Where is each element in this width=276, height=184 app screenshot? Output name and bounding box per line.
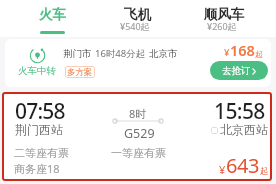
button[interactable]: 多方案 xyxy=(65,66,95,78)
staticText: 多方案 xyxy=(67,67,93,78)
staticText: 荆门市 xyxy=(63,48,92,60)
button[interactable]: 火车 xyxy=(20,0,84,37)
staticText: 643 xyxy=(226,152,260,179)
staticText: ¥260起 xyxy=(207,20,237,32)
staticText: 16时48分起 xyxy=(95,47,146,60)
button[interactable]: 07:58 xyxy=(2,92,272,181)
staticText: 二等座有票 xyxy=(14,146,69,160)
staticText: 北京市 xyxy=(149,48,178,60)
button[interactable]: 顺风车 xyxy=(193,0,257,37)
staticText: 飞机 xyxy=(124,6,151,23)
staticText: 15:58 xyxy=(214,97,265,126)
staticText: 一等座有票 xyxy=(111,146,166,160)
button[interactable]: 去抢订 xyxy=(210,61,268,80)
other: Train transfer xyxy=(29,47,46,64)
staticText: 8时 xyxy=(129,106,147,121)
staticText: 去抢订 xyxy=(222,65,251,77)
staticText: ¥ xyxy=(219,162,226,177)
staticText: 起 xyxy=(255,49,263,59)
staticText: G529 xyxy=(124,125,155,142)
staticText: 荆门西站 xyxy=(15,122,63,137)
staticText: 起 xyxy=(260,166,269,177)
staticText: 168 xyxy=(230,40,255,60)
staticText: 北京西站 xyxy=(220,122,268,137)
staticText: ¥540起 xyxy=(120,20,150,32)
button[interactable]: 飞机 xyxy=(106,0,170,37)
staticText: 07:58 xyxy=(15,97,65,126)
staticText: 火车 xyxy=(39,6,66,23)
staticText: 顺风车 xyxy=(204,6,245,23)
button[interactable]: Train transfer xyxy=(5,39,271,87)
staticText: 商务座18 xyxy=(14,161,60,176)
staticText: ¥ xyxy=(224,46,230,59)
staticText: 火车中转 xyxy=(18,65,56,77)
